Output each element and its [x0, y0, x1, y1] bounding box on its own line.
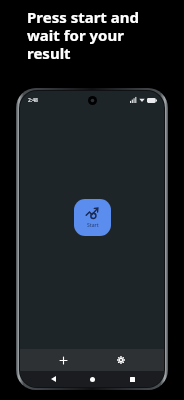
staticText: 2:48	[28, 97, 38, 104]
button[interactable]: Back	[46, 372, 60, 386]
button[interactable]: Add	[56, 353, 70, 367]
staticText: Press start and wait for your result	[27, 7, 139, 64]
button[interactable]: Recent apps	[125, 372, 139, 386]
button[interactable]: Home	[85, 372, 99, 386]
other: Start measurement	[85, 206, 100, 221]
button[interactable]: Settings	[114, 353, 128, 367]
staticText: Start	[87, 222, 99, 229]
button[interactable]: Start measurement	[74, 199, 111, 236]
